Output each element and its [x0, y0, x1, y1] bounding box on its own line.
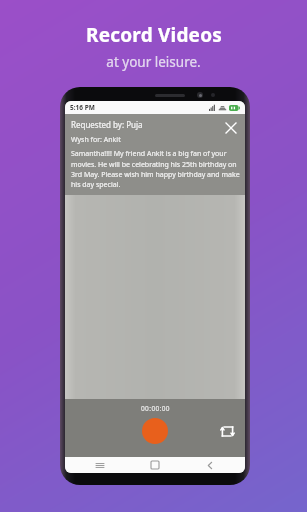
- staticText: Wysh for: Ankit: [71, 135, 121, 145]
- button[interactable]: Back: [190, 457, 230, 473]
- button[interactable]: Record: [140, 416, 170, 446]
- button[interactable]: Recents: [80, 457, 120, 473]
- staticText: Samantha!!!! My friend Ankit is a big fa…: [71, 149, 240, 189]
- button[interactable]: Home: [135, 457, 175, 473]
- staticText: at your leisure.: [106, 53, 201, 71]
- staticText: 5:16 PM: [70, 103, 95, 112]
- staticText: Record Videos: [86, 22, 222, 48]
- staticText: Requested by: Puja: [71, 119, 143, 130]
- button[interactable]: Switch camera: [215, 419, 239, 443]
- staticText: 00:00:00: [141, 404, 170, 413]
- button[interactable]: Close: [222, 119, 240, 137]
